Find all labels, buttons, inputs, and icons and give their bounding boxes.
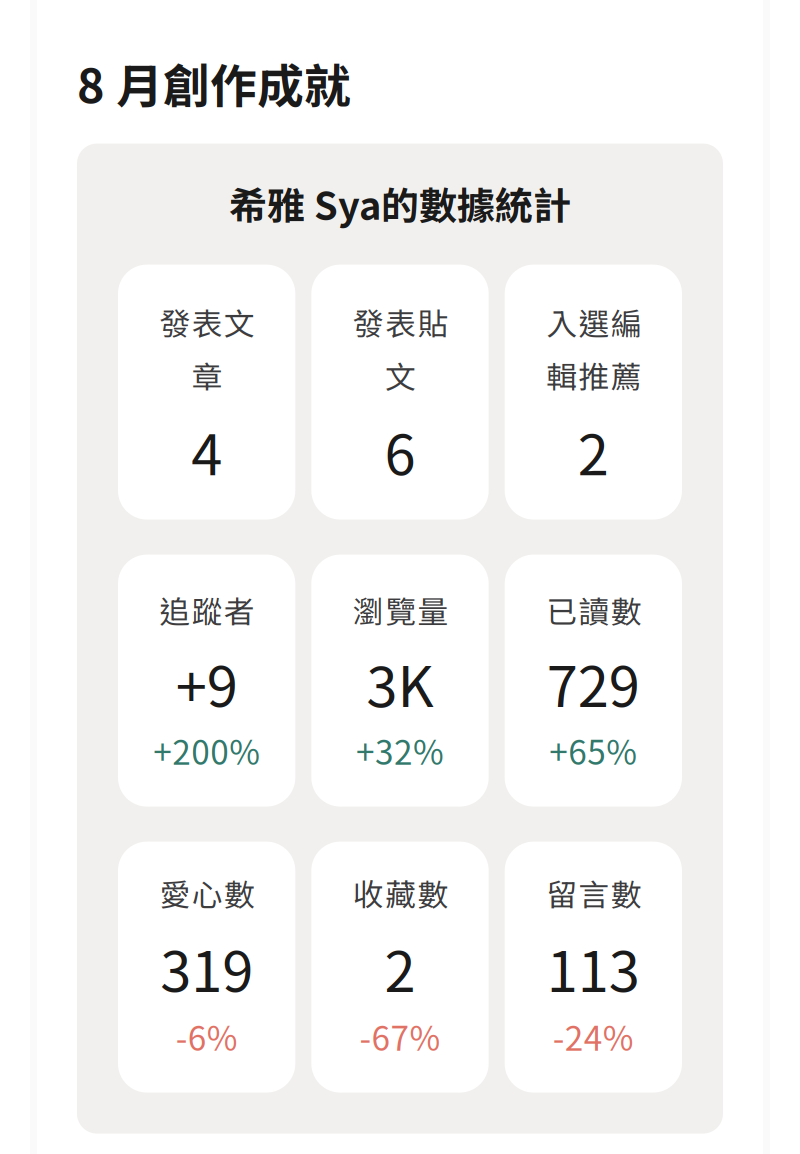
staticText: -6% [176,1012,238,1060]
staticText: 瀏覽量 [352,588,448,632]
button[interactable]: 追蹤者 [118,555,295,807]
staticText: 留言數 [545,871,641,915]
staticText: 希雅 Sya的數據統計 [229,176,571,231]
button[interactable]: 發表文章 [118,265,295,520]
button[interactable]: 留言數 [505,842,682,1093]
button[interactable]: 入選編輯推薦 [505,265,682,520]
staticText: 發表貼文 [352,300,448,397]
staticText: 319 [160,927,253,1008]
staticText: +32% [356,726,444,774]
staticText: 6 [384,410,415,491]
staticText: 已讀數 [545,588,641,632]
staticText: 729 [547,642,640,723]
staticText: 愛心數 [159,871,254,915]
staticText: 2 [578,410,609,491]
staticText: -24% [553,1012,634,1060]
staticText: +200% [153,726,260,774]
button[interactable]: 愛心數 [118,842,295,1093]
button[interactable]: 發表貼文 [311,265,489,520]
staticText: 113 [547,927,640,1008]
staticText: 發表文章 [159,300,254,397]
staticText: 收藏數 [352,871,448,915]
button[interactable]: 已讀數 [505,555,682,807]
staticText: -67% [359,1012,440,1060]
button[interactable]: 收藏數 [311,842,489,1093]
button[interactable]: 瀏覽量 [311,555,489,807]
staticText: 2 [384,927,415,1008]
staticText: +9 [176,642,238,723]
staticText: 8 月創作成就 [77,49,351,117]
staticText: 3K [366,642,433,723]
staticText: 入選編輯推薦 [545,300,641,397]
staticText: +65% [549,726,637,774]
staticText: 追蹤者 [159,588,254,632]
staticText: 4 [191,410,222,491]
